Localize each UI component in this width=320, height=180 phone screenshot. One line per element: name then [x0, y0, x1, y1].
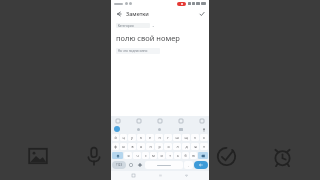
- button[interactable]: Home: [157, 172, 164, 179]
- button[interactable]: я: [124, 152, 132, 159]
- button[interactable]: Keyboard tool 1: [115, 118, 121, 124]
- staticText: п: [149, 144, 152, 149]
- button[interactable]: Keyboard tool 2: [136, 118, 142, 124]
- button[interactable]: м: [150, 152, 157, 159]
- button[interactable]: Enter: [194, 161, 208, 169]
- staticText: р: [158, 144, 161, 149]
- button[interactable]: ь: [174, 152, 181, 159]
- button[interactable]: а: [137, 143, 145, 150]
- staticText: з: [194, 135, 196, 140]
- staticText: ш: [175, 135, 179, 140]
- button[interactable]: э: [200, 143, 208, 150]
- button[interactable]: ш: [173, 134, 181, 141]
- button[interactable]: Space: [145, 161, 183, 169]
- button[interactable]: н: [155, 134, 163, 141]
- button[interactable]: Microphone: [78, 140, 110, 172]
- button[interactable]: ц: [120, 134, 127, 141]
- button[interactable]: Keyboard tool 5: [199, 118, 205, 124]
- staticText: ц: [122, 135, 125, 140]
- staticText: ж: [194, 144, 197, 149]
- staticText: ?123: [116, 163, 123, 167]
- button[interactable]: Back: [114, 9, 123, 18]
- button[interactable]: х: [200, 134, 208, 141]
- staticText: о: [167, 144, 170, 149]
- button[interactable]: На что подписанно: [116, 48, 160, 54]
- staticText: у: [131, 135, 133, 140]
- button[interactable]: т: [166, 152, 173, 159]
- button[interactable]: п: [146, 143, 154, 150]
- staticText: ь: [177, 153, 179, 158]
- button[interactable]: б: [182, 152, 189, 159]
- button[interactable]: ?123: [112, 161, 126, 169]
- staticText: полю свой номер: [116, 33, 180, 43]
- staticText: г: [167, 135, 169, 140]
- staticText: и: [160, 153, 163, 158]
- button[interactable]: Keyboard tool 3: [157, 118, 163, 124]
- button[interactable]: и: [158, 152, 165, 159]
- button[interactable]: Backspace: [198, 152, 208, 159]
- button[interactable]: ы: [120, 143, 127, 150]
- button[interactable]: ю: [190, 152, 197, 159]
- staticText: ч: [136, 153, 139, 158]
- staticText: д: [185, 144, 188, 149]
- button[interactable]: о: [164, 143, 172, 150]
- staticText: б: [184, 153, 187, 158]
- button[interactable]: Confirm: [210, 140, 242, 172]
- staticText: .: [188, 163, 189, 168]
- staticText: Заметки: [126, 10, 149, 17]
- staticText: ⌄: [152, 24, 155, 28]
- button[interactable]: в: [128, 143, 136, 150]
- staticText: я: [127, 153, 130, 158]
- staticText: а: [140, 144, 142, 149]
- button[interactable]: .: [184, 161, 193, 169]
- button[interactable]: Emoji: [127, 161, 135, 169]
- staticText: й: [114, 135, 117, 140]
- staticText: т: [169, 153, 171, 158]
- staticText: е: [149, 135, 151, 140]
- staticText: ф: [114, 144, 117, 149]
- button[interactable]: Keyboard tool 4: [178, 118, 184, 124]
- button[interactable]: Back: [183, 172, 190, 179]
- staticText: х: [203, 135, 205, 140]
- staticText: э: [203, 144, 205, 149]
- staticText: ю: [192, 153, 195, 158]
- button[interactable]: ч: [133, 152, 141, 159]
- staticText: л: [176, 144, 179, 149]
- button[interactable]: Gallery: [22, 140, 54, 172]
- button[interactable]: р: [155, 143, 163, 150]
- button[interactable]: д: [182, 143, 190, 150]
- button[interactable]: Save: [197, 9, 206, 18]
- button[interactable]: е: [146, 134, 154, 141]
- button[interactable]: Settings: [136, 161, 144, 169]
- button[interactable]: Shift: [112, 152, 123, 159]
- button[interactable]: з: [191, 134, 199, 141]
- staticText: м: [152, 153, 155, 158]
- button[interactable]: г: [164, 134, 172, 141]
- button[interactable]: Voice input: [201, 127, 206, 132]
- button[interactable]: с: [142, 152, 149, 159]
- staticText: щ: [184, 135, 188, 140]
- staticText: с: [145, 153, 147, 158]
- button[interactable]: к: [137, 134, 145, 141]
- button[interactable]: у: [128, 134, 136, 141]
- staticText: н: [158, 135, 161, 140]
- staticText: в: [131, 144, 134, 149]
- button[interactable]: Alarm: [266, 140, 298, 172]
- button[interactable]: Suggestion: [114, 126, 120, 132]
- staticText: Категория: [116, 24, 134, 28]
- button[interactable]: Категория: [116, 23, 150, 28]
- staticText: ы: [122, 144, 125, 149]
- staticText: к: [140, 135, 142, 140]
- button[interactable]: Recents: [130, 172, 137, 179]
- button[interactable]: ф: [112, 143, 119, 150]
- button[interactable]: л: [173, 143, 181, 150]
- button[interactable]: ж: [191, 143, 199, 150]
- button[interactable]: щ: [182, 134, 190, 141]
- button[interactable]: й: [112, 134, 119, 141]
- staticText: На что подписанно: [116, 49, 148, 53]
